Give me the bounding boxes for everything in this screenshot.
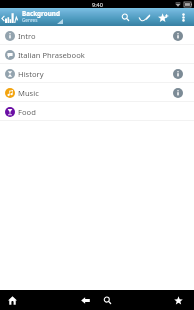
button[interactable]: Back <box>78 293 92 307</box>
button[interactable]: Intro <box>0 26 194 45</box>
staticText: Food <box>18 107 36 117</box>
staticText: Background <box>22 9 60 18</box>
button[interactable]: Search <box>100 293 114 307</box>
staticText: Intro <box>18 31 36 41</box>
staticText: Genres <box>22 17 38 23</box>
button[interactable]: Done <box>135 8 154 26</box>
button[interactable]: Home <box>5 293 19 307</box>
button[interactable]: Music <box>0 83 194 102</box>
staticText: Music <box>18 88 39 98</box>
button[interactable]: History <box>0 64 194 83</box>
button[interactable]: Search <box>116 8 135 26</box>
button[interactable]: Food <box>0 102 194 121</box>
button[interactable]: Navigate up <box>0 8 18 26</box>
button[interactable]: Italian Phrasebook <box>0 45 194 64</box>
staticText: 9:40 <box>92 1 103 8</box>
button[interactable]: Favorite <box>171 293 185 307</box>
staticText: History <box>18 69 44 79</box>
button[interactable]: More options <box>173 8 194 26</box>
staticText: Italian Phrasebook <box>18 50 85 60</box>
button[interactable]: Favorite <box>154 8 173 26</box>
